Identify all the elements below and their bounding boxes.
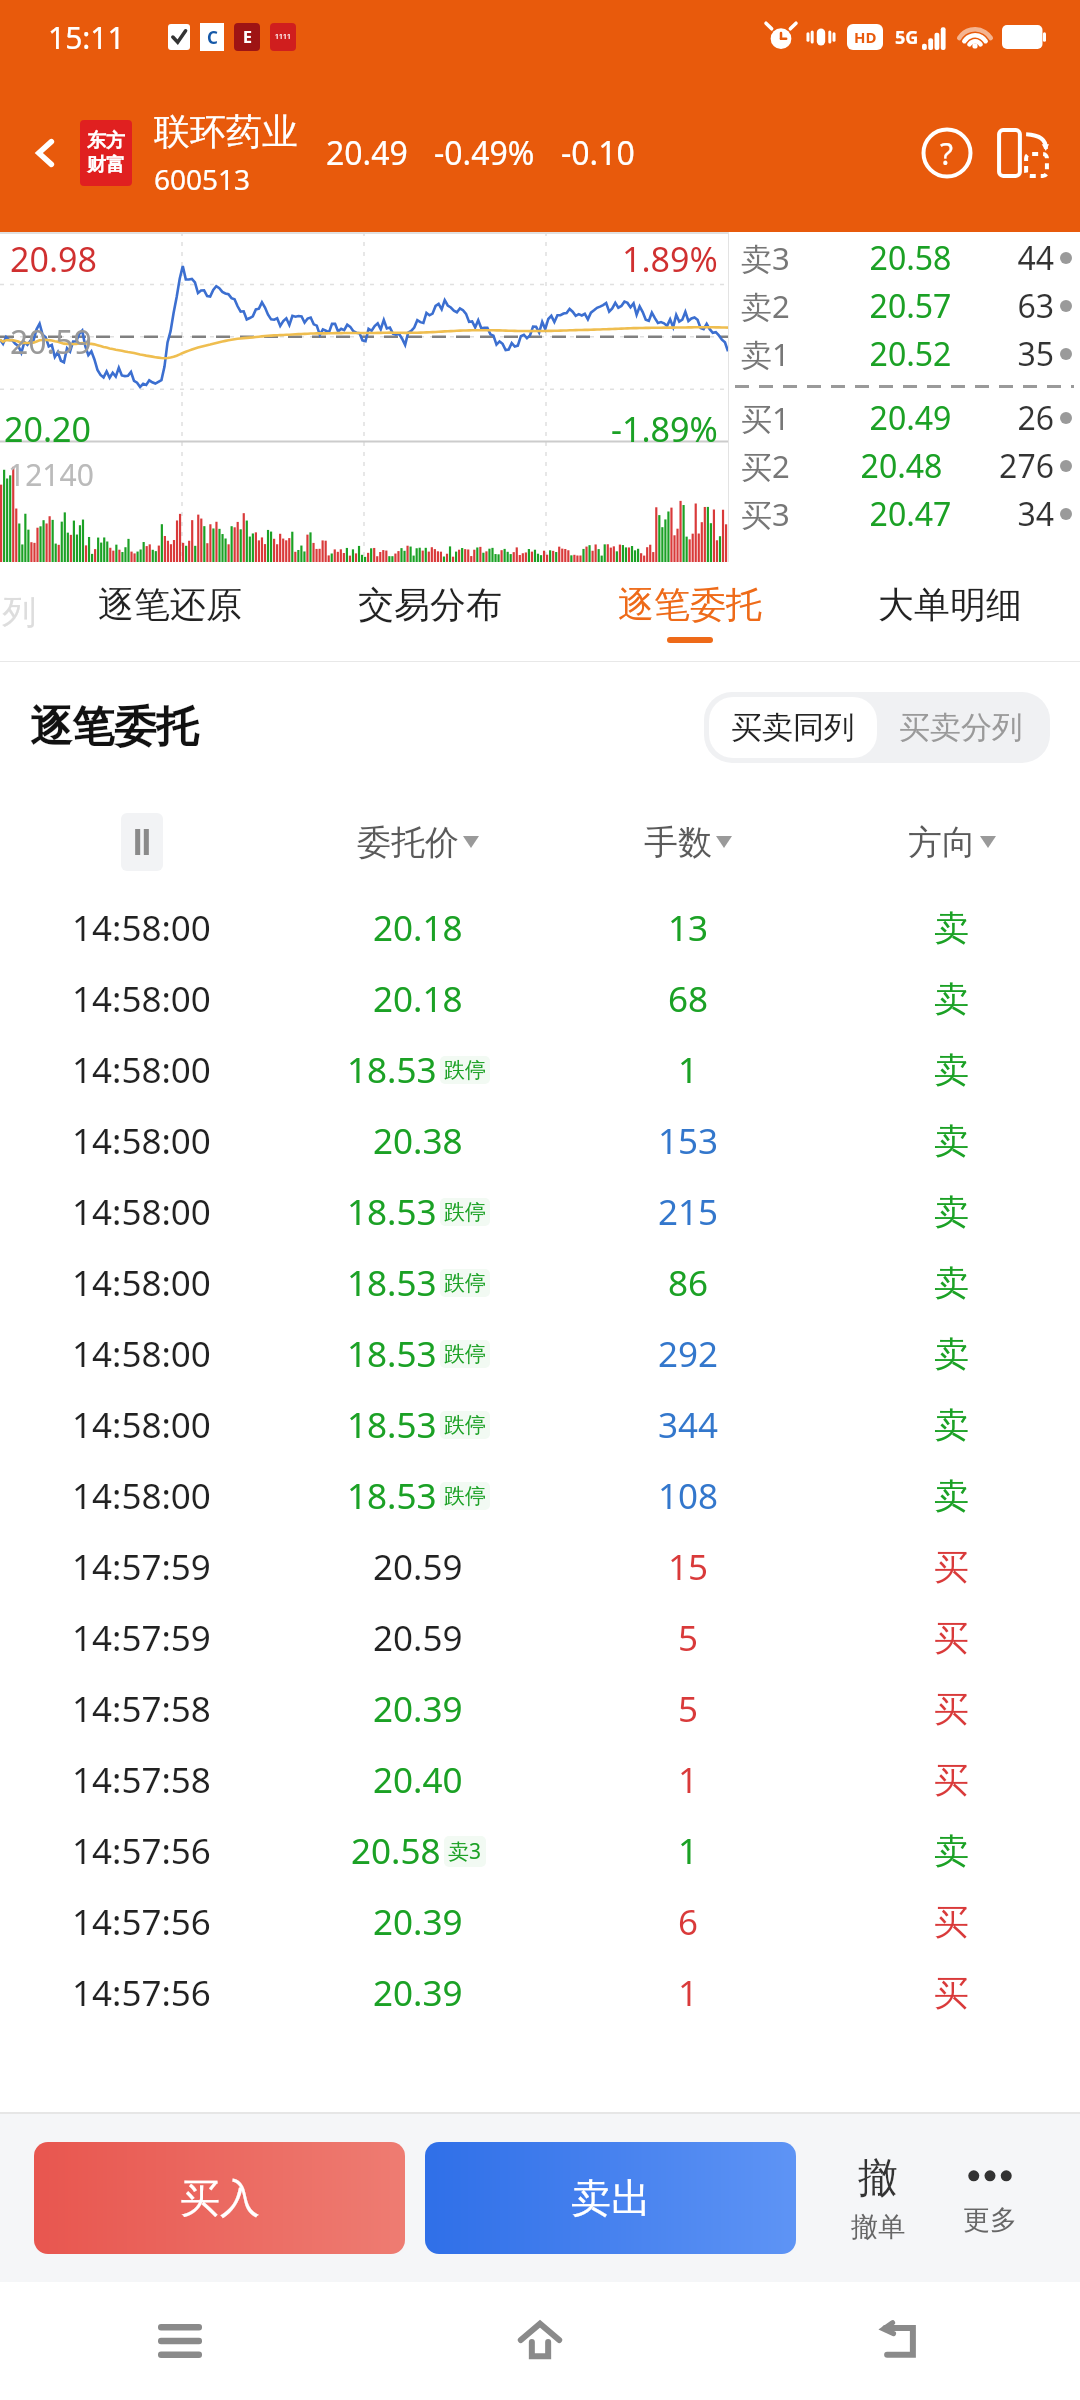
button[interactable]: 手数 <box>553 792 823 892</box>
button[interactable]: 14:57:56 <box>0 1815 1080 1886</box>
button[interactable]: 方向 <box>823 792 1080 892</box>
staticText: E <box>243 26 252 48</box>
staticText: 卖 <box>934 1332 969 1376</box>
staticText: 买 <box>934 1971 969 2015</box>
button[interactable]: 逐笔还原 <box>40 562 300 662</box>
staticText: 1 <box>678 1827 699 1875</box>
staticText: 卖 <box>934 1048 969 1092</box>
staticText: 买2 <box>741 445 790 487</box>
staticText: 292 <box>658 1330 719 1378</box>
button[interactable]: 卖1 <box>729 330 1080 378</box>
staticText: 20.39 <box>373 1969 463 2017</box>
staticText: HD <box>854 27 877 47</box>
staticText: 1.89% <box>622 236 718 282</box>
button[interactable]: 14:57:58 <box>0 1673 1080 1744</box>
staticText: 14:58:00 <box>72 904 211 952</box>
staticText: 14:58:00 <box>72 1117 211 1165</box>
staticText: 卖 <box>934 1261 969 1305</box>
staticText: 20.49 <box>804 396 1017 440</box>
staticText: -0.49% <box>434 131 535 175</box>
staticText: 逐笔委托 <box>30 701 198 754</box>
button[interactable]: Home <box>360 2282 720 2400</box>
staticText: 14:57:56 <box>72 1898 211 1946</box>
button[interactable]: Split screen <box>992 122 1054 184</box>
staticText: 卖 <box>934 906 969 950</box>
button[interactable]: 卖出 <box>425 2142 796 2254</box>
staticText: 方向 <box>908 821 976 864</box>
staticText: 20.18 <box>373 975 463 1023</box>
staticText: 15:11 <box>48 17 125 58</box>
button[interactable]: 大单明细 <box>820 562 1080 662</box>
button[interactable]: 卖2 <box>729 282 1080 330</box>
button[interactable]: 撤 <box>822 2114 934 2282</box>
staticText: 15 <box>668 1543 709 1591</box>
button[interactable]: 14:58:00 <box>0 1105 1080 1176</box>
staticText: 34 <box>1017 492 1054 536</box>
staticText: 跌停 <box>444 1412 486 1438</box>
button[interactable]: Recent apps <box>0 2282 360 2400</box>
staticText: 215 <box>658 1188 719 1236</box>
staticText: 买入 <box>180 2173 260 2223</box>
staticText: 14:58:00 <box>72 1188 211 1236</box>
button[interactable]: 买卖分列 <box>877 697 1045 758</box>
button[interactable]: 14:57:56 <box>0 1957 1080 2028</box>
staticText: 20.49 <box>326 131 408 175</box>
button[interactable]: Back <box>720 2282 1080 2400</box>
staticText: 18.53 <box>347 1330 437 1378</box>
button[interactable]: 14:58:00 <box>0 1389 1080 1460</box>
staticText: 14:58:00 <box>72 1472 211 1520</box>
staticText: 14:57:58 <box>72 1685 211 1733</box>
button[interactable]: 买1 <box>729 394 1080 442</box>
button[interactable]: 14:58:00 <box>0 963 1080 1034</box>
button[interactable]: 14:58:00 <box>0 892 1080 963</box>
button[interactable]: Help <box>916 122 978 184</box>
staticText: 26 <box>1017 396 1054 440</box>
staticText: 20.18 <box>373 904 463 952</box>
staticText: 108 <box>658 1472 719 1520</box>
staticText: 20.48 <box>804 444 999 488</box>
staticText: 跌停 <box>444 1199 486 1225</box>
staticText: 20.52 <box>804 332 1017 376</box>
staticText: 撤单 <box>851 2210 905 2244</box>
button[interactable]: 14:58:00 <box>0 1318 1080 1389</box>
button[interactable]: 买2 <box>729 442 1080 490</box>
staticText: 1 <box>678 1046 699 1094</box>
button[interactable]: 逐笔委托 <box>560 562 820 662</box>
button[interactable]: 14:58:00 <box>0 1176 1080 1247</box>
button[interactable]: 买入 <box>34 2142 405 2254</box>
staticText: 卖3 <box>741 237 790 279</box>
button[interactable]: 买3 <box>729 490 1080 538</box>
staticText: 18.53 <box>347 1259 437 1307</box>
button[interactable]: 14:57:59 <box>0 1602 1080 1673</box>
staticText: 列 <box>2 591 36 634</box>
staticText: 14:58:00 <box>72 1046 211 1094</box>
button[interactable]: 14:57:59 <box>0 1531 1080 1602</box>
button[interactable]: Back <box>18 125 74 181</box>
staticText: 600513 <box>154 160 251 198</box>
button[interactable]: 更多 <box>934 2114 1046 2282</box>
staticText: 20.57 <box>804 284 1017 328</box>
staticText: ? <box>940 133 954 174</box>
button[interactable]: 卖3 <box>729 234 1080 282</box>
staticText: 买3 <box>741 493 790 535</box>
button[interactable]: 买卖同列 <box>709 697 877 758</box>
staticText: 跌停 <box>444 1341 486 1367</box>
button[interactable]: 14:57:56 <box>0 1886 1080 1957</box>
button[interactable]: 交易分布 <box>300 562 560 662</box>
staticText: 东方 <box>87 129 125 153</box>
button[interactable]: 14:58:00 <box>0 1460 1080 1531</box>
staticText: 买卖分列 <box>899 708 1023 747</box>
staticText: 20.39 <box>373 1685 463 1733</box>
staticText: 276 <box>999 444 1054 488</box>
button[interactable]: 14:57:58 <box>0 1744 1080 1815</box>
staticText: 20.20 <box>4 406 91 452</box>
button[interactable]: 委托价 <box>283 792 553 892</box>
button[interactable]: 14:58:00 <box>0 1034 1080 1105</box>
staticText: 卖3 <box>448 1837 482 1866</box>
button[interactable]: Pause <box>121 813 163 871</box>
staticText: C <box>207 26 218 49</box>
staticText: 20.59 <box>373 1614 463 1662</box>
staticText: 13 <box>668 904 709 952</box>
staticText: 20.38 <box>373 1117 463 1165</box>
button[interactable]: 14:58:00 <box>0 1247 1080 1318</box>
